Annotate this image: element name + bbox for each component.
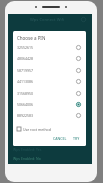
button[interactable]: Use root method: [17, 124, 86, 134]
button[interactable]: 50664006: [17, 99, 81, 110]
button[interactable]: Wps Connect Wifi: [8, 14, 92, 24]
staticText: 50664006: [17, 102, 34, 107]
staticText: 48064428: [17, 56, 34, 61]
staticText: 58719957: [17, 68, 34, 73]
staticText: Wps Enabled: No: [13, 156, 41, 161]
button[interactable]: 31568950: [17, 88, 81, 99]
staticText: 44113086: [17, 79, 34, 84]
staticText: 31568950: [17, 91, 34, 96]
staticText: 88922583: [17, 113, 34, 118]
staticText: 32552615: [17, 45, 34, 50]
button[interactable]: 32552615: [17, 42, 81, 53]
button[interactable]: Refresh: [80, 16, 87, 23]
staticText: Wps Connect Wifi: [30, 17, 65, 23]
button[interactable]: 44113086: [17, 76, 81, 87]
button[interactable]: 48064428: [17, 53, 81, 64]
staticText: Choose a PIN: [17, 35, 46, 41]
staticText: Use root method: [23, 127, 51, 132]
button[interactable]: TRY: [72, 135, 81, 142]
button[interactable]: 58719957: [17, 65, 81, 76]
button[interactable]: CANCEL: [52, 135, 68, 142]
staticText: CANCEL: [53, 136, 67, 141]
staticText: Wps Enabled: Yes: [13, 147, 42, 152]
button[interactable]: 88922583: [17, 110, 81, 121]
staticText: TRY: [73, 136, 80, 141]
